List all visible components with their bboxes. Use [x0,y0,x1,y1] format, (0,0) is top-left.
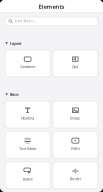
staticText: Elements [38,2,64,10]
staticText: Basic [10,92,19,97]
staticText: Layout [10,41,21,46]
button[interactable]: Image [53,101,98,128]
button[interactable]: Video [53,131,98,158]
staticText: Heading [21,116,34,120]
staticText: Video [71,146,80,151]
button[interactable]: Divider [53,162,98,189]
button[interactable]: Heading [5,101,50,128]
button[interactable]: Button [5,162,50,189]
staticText: Grid [72,65,78,69]
staticText: Search Widget... [14,19,36,23]
button[interactable]: Text Editor [5,131,50,158]
staticText: Text Editor [19,146,36,151]
button[interactable]: Container [5,50,50,77]
staticText: Divider [70,177,81,181]
staticText: Image [70,116,80,120]
button[interactable]: Grid [53,50,98,77]
staticText: Container [20,64,35,69]
button[interactable]: Basic [5,91,98,97]
button[interactable]: Layout [5,40,98,46]
staticText: Button [23,177,33,181]
